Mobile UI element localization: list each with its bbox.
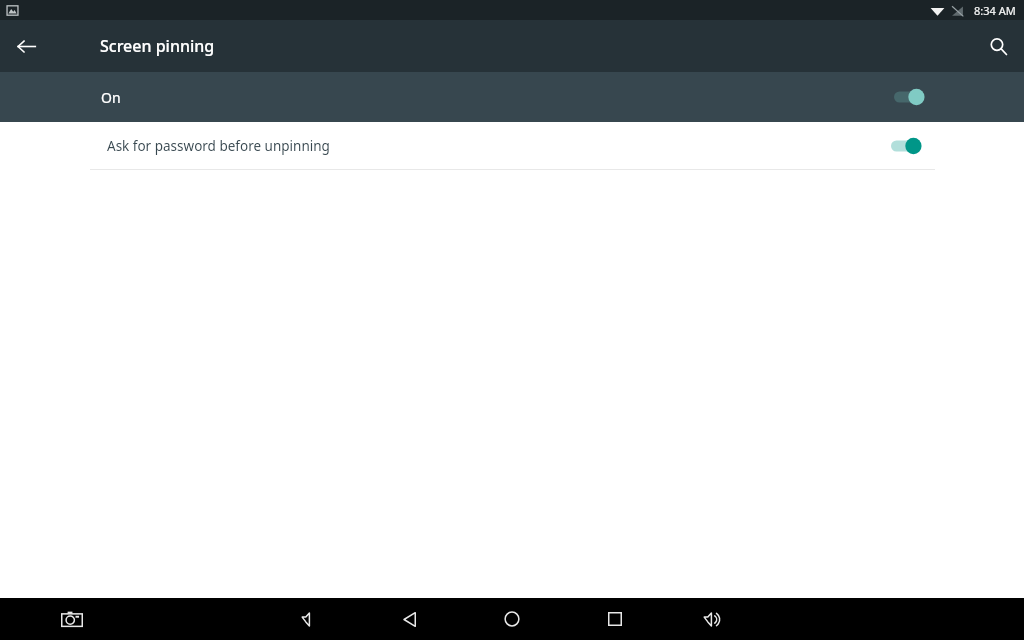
staticText: 8:34 AM [974,3,1016,18]
staticText: Screen pinning [100,35,215,57]
button[interactable]: Toggle [891,135,925,157]
button[interactable]: Home [491,598,533,640]
button[interactable]: Recent apps [594,598,636,640]
staticText: On [101,88,121,107]
button[interactable]: Screenshot [52,599,92,639]
button[interactable]: Volume up [692,598,734,640]
button[interactable]: On [0,72,1024,122]
button[interactable]: Back [4,24,48,68]
button[interactable]: Back [389,598,431,640]
button[interactable]: Search [976,24,1020,68]
button[interactable]: Toggle [894,86,928,108]
button[interactable]: Ask for password before unpinning [0,122,1024,169]
button[interactable]: Volume down [291,599,331,639]
staticText: Ask for password before unpinning [107,137,330,155]
